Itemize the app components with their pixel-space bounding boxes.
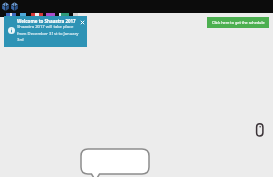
other: 0 bbox=[254, 122, 265, 138]
staticText: Welcome to Shaastra 2017 bbox=[17, 18, 76, 24]
staticText: Shaastra 2017 will take place from Decem… bbox=[17, 24, 81, 42]
button[interactable]: Click here to get the schedule bbox=[207, 17, 269, 28]
button[interactable]: App bbox=[2, 2, 9, 11]
staticText: Click here to get the schedule bbox=[212, 20, 265, 25]
button[interactable]: Close bbox=[80, 20, 85, 25]
button[interactable]: Welcome to Shaastra 2017 bbox=[4, 16, 87, 47]
button[interactable]: App bbox=[11, 2, 18, 11]
